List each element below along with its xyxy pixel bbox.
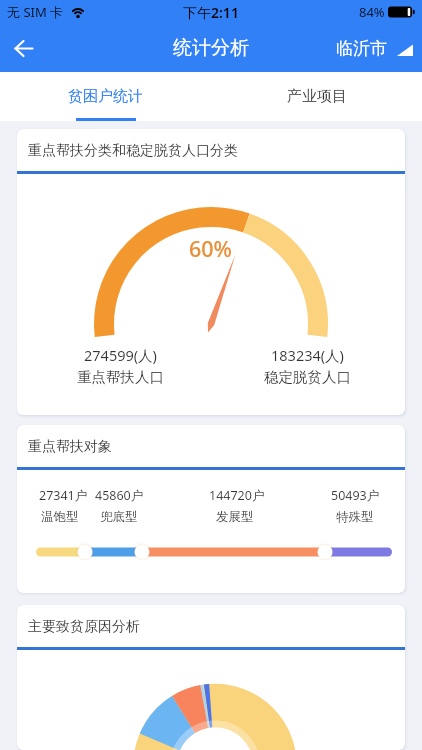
- button[interactable]: [6, 30, 42, 66]
- button[interactable]: 产业项目: [211, 72, 422, 121]
- staticText: 主要致贫原因分析: [28, 618, 140, 636]
- staticText: 45860户: [95, 487, 144, 504]
- staticText: 重点帮扶分类和稳定脱贫人口分类: [28, 142, 238, 160]
- staticText: 84%: [359, 3, 385, 21]
- button[interactable]: 贫困户统计: [0, 72, 211, 121]
- staticText: 重点帮扶人口: [77, 368, 164, 386]
- staticText: 兜底型: [100, 509, 138, 525]
- staticText: 发展型: [216, 509, 254, 525]
- staticText: 稳定脱贫人口: [264, 368, 351, 386]
- staticText: 183234(人): [271, 345, 344, 365]
- staticText: 274599(人): [84, 345, 157, 365]
- staticText: 27341户: [39, 487, 88, 504]
- staticText: 贫困户统计: [68, 87, 143, 106]
- button[interactable]: 临沂市: [326, 24, 414, 72]
- staticText: 产业项目: [287, 87, 347, 106]
- staticText: 50493户: [331, 487, 380, 504]
- staticText: 无 SIM 卡: [7, 3, 64, 21]
- staticText: 下午2:11: [183, 3, 239, 22]
- staticText: 144720户: [209, 487, 265, 504]
- staticText: 统计分析: [173, 36, 249, 60]
- staticText: 临沂市: [336, 38, 387, 59]
- staticText: 温饱型: [41, 509, 79, 525]
- staticText: 60%: [189, 234, 232, 263]
- staticText: 特殊型: [336, 509, 374, 525]
- staticText: 重点帮扶对象: [28, 438, 112, 456]
